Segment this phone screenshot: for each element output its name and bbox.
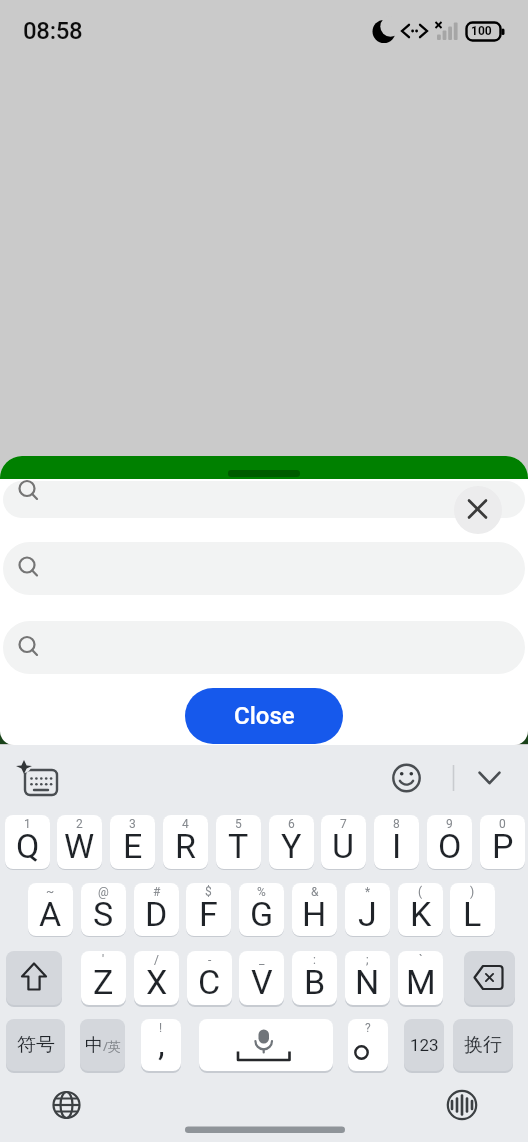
staticText: 1 <box>24 817 31 831</box>
staticText: X <box>146 962 168 1002</box>
staticText: D <box>145 894 168 934</box>
staticText: 6 <box>288 817 295 831</box>
staticText: _ <box>259 953 265 967</box>
button[interactable]: 7 <box>321 815 366 869</box>
staticText: 4 <box>182 817 189 831</box>
staticText: Q <box>16 826 40 866</box>
staticText: E <box>123 826 143 866</box>
button[interactable]: : <box>292 951 337 1005</box>
button[interactable]: 符号 <box>6 1019 65 1071</box>
button[interactable] <box>3 542 525 595</box>
staticText: ) <box>470 885 475 899</box>
staticText: P <box>492 826 514 866</box>
button[interactable]: _ <box>239 951 284 1005</box>
button[interactable]: ' <box>81 951 126 1005</box>
staticText: & <box>311 885 319 899</box>
button[interactable]: $ <box>186 883 231 936</box>
button[interactable]: 1 <box>5 815 50 869</box>
button[interactable]: * <box>345 883 390 936</box>
staticText: ( <box>418 885 423 899</box>
staticText: % <box>257 885 266 899</box>
button[interactable] <box>3 481 525 518</box>
staticText: 100 <box>471 24 492 38</box>
staticText: A <box>39 894 62 934</box>
button[interactable]: 0 <box>480 815 525 869</box>
staticText: ~ <box>46 885 55 899</box>
button[interactable]: 5 <box>216 815 261 869</box>
staticText: / <box>154 953 159 967</box>
staticText: 123 <box>410 1035 439 1055</box>
staticText: ? <box>365 1021 371 1035</box>
button[interactable]: 换行 <box>453 1019 513 1071</box>
staticText: /英 <box>103 1037 121 1055</box>
staticText: : <box>313 953 316 967</box>
staticText: O <box>438 826 462 866</box>
staticText: @ <box>98 885 109 899</box>
button[interactable]: 8 <box>374 815 419 869</box>
button[interactable]: ! <box>141 1019 181 1071</box>
staticText: ; <box>366 953 369 967</box>
staticText: K <box>410 894 432 934</box>
button[interactable]: % <box>239 883 284 936</box>
staticText: T <box>228 826 249 866</box>
button[interactable] <box>472 760 510 798</box>
staticText: Close <box>234 702 295 730</box>
staticText: 符号 <box>17 1033 55 1057</box>
staticText: 3 <box>129 817 136 831</box>
button[interactable] <box>199 1019 333 1071</box>
staticText: # <box>153 885 161 899</box>
staticText: L <box>463 894 482 934</box>
staticText: U <box>332 826 355 866</box>
button[interactable] <box>48 1086 86 1124</box>
staticText: ` <box>419 953 423 967</box>
staticText: Y <box>281 826 302 866</box>
staticText: 2 <box>76 817 83 831</box>
button[interactable]: 3 <box>110 815 155 869</box>
staticText: S <box>93 894 114 934</box>
staticText: M <box>406 962 436 1002</box>
staticText: 换行 <box>464 1033 502 1057</box>
button[interactable]: ` <box>398 951 443 1005</box>
button[interactable]: 4 <box>163 815 208 869</box>
button[interactable] <box>443 1086 481 1124</box>
staticText: - <box>208 953 212 967</box>
button[interactable] <box>388 760 426 798</box>
staticText: R <box>175 826 196 866</box>
button[interactable]: ) <box>450 883 495 936</box>
button[interactable] <box>6 951 62 1005</box>
button[interactable]: / <box>134 951 179 1005</box>
button[interactable]: @ <box>81 883 126 936</box>
staticText: ' <box>102 953 105 967</box>
staticText: H <box>302 894 327 934</box>
button[interactable]: 2 <box>57 815 102 869</box>
staticText: G <box>250 894 274 934</box>
button[interactable]: ? <box>348 1019 388 1071</box>
button[interactable]: ( <box>398 883 443 936</box>
button[interactable]: 6 <box>269 815 314 869</box>
staticText: 7 <box>340 817 347 831</box>
staticText: Z <box>93 962 114 1002</box>
staticText: B <box>304 962 326 1002</box>
staticText: C <box>198 962 221 1002</box>
button[interactable] <box>3 621 525 674</box>
button[interactable] <box>16 760 62 798</box>
button[interactable]: - <box>187 951 232 1005</box>
button[interactable] <box>464 951 515 1005</box>
staticText: F <box>199 894 218 934</box>
button[interactable]: ; <box>345 951 390 1005</box>
staticText: 5 <box>235 817 242 831</box>
button[interactable]: # <box>134 883 179 936</box>
staticText: I <box>392 826 402 866</box>
button[interactable]: ~ <box>28 883 73 936</box>
staticText: 中 <box>85 1034 103 1057</box>
button[interactable]: & <box>292 883 337 936</box>
staticText: 0 <box>499 817 506 831</box>
button[interactable]: 123 <box>404 1019 444 1071</box>
button[interactable]: Close <box>185 688 343 744</box>
button[interactable]: 中 <box>80 1019 125 1071</box>
staticText: 8 <box>393 817 400 831</box>
staticText: W <box>64 826 95 866</box>
button[interactable] <box>454 486 502 534</box>
button[interactable]: 9 <box>427 815 472 869</box>
staticText: V <box>251 962 273 1002</box>
